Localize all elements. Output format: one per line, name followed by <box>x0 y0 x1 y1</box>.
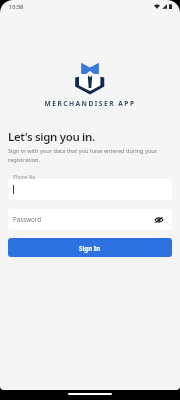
button[interactable]: Show password <box>154 215 164 225</box>
staticText: Sign in with your data that you have ent… <box>8 147 157 164</box>
button[interactable]: Sign In <box>8 238 172 257</box>
staticText: 10:58 <box>9 3 24 11</box>
button[interactable]: Password <box>8 209 172 230</box>
button[interactable] <box>8 179 172 200</box>
staticText: Password <box>13 215 41 223</box>
staticText: MERCHANDISER APP <box>0 99 180 108</box>
staticText: Sign In <box>79 244 101 252</box>
staticText: Phone No. <box>13 174 37 181</box>
staticText: Let's sign you in. <box>8 129 95 145</box>
